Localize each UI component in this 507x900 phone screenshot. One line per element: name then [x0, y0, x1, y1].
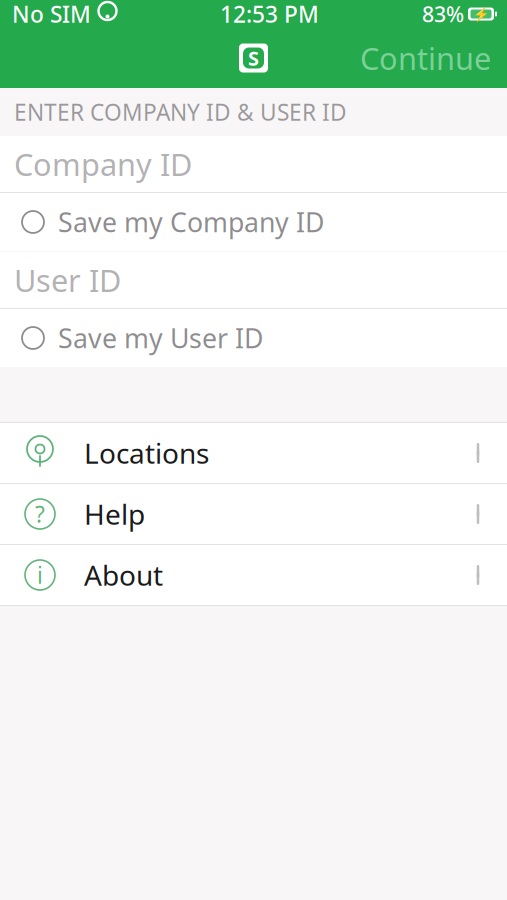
staticText: Continue: [360, 38, 491, 78]
button[interactable]: Continue: [360, 38, 507, 78]
button[interactable]: ?: [0, 484, 507, 544]
staticText: Locations: [84, 434, 209, 472]
staticText: No SIM: [12, 0, 91, 29]
staticText: ?: [35, 499, 45, 529]
staticText: About: [84, 556, 163, 594]
staticText: 83%: [422, 0, 464, 28]
button[interactable]: Locations: [0, 423, 507, 483]
staticText: Company ID: [14, 144, 192, 184]
staticText: Help: [84, 495, 145, 533]
staticText: User ID: [14, 260, 121, 300]
button[interactable]: Save my User ID: [0, 309, 507, 367]
staticText: S: [248, 45, 259, 71]
staticText: Save my Company ID: [58, 204, 324, 240]
staticText: 12:53 PM: [220, 0, 319, 29]
button[interactable]: App logo: [239, 43, 268, 72]
staticText: Save my User ID: [58, 320, 263, 356]
button[interactable]: Save my Company ID: [0, 193, 507, 251]
button[interactable]: Company ID: [0, 136, 507, 192]
button[interactable]: User ID: [0, 252, 507, 308]
staticText: i: [37, 560, 43, 590]
staticText: ENTER COMPANY ID & USER ID: [14, 97, 347, 127]
staticText: ⚡: [472, 6, 489, 22]
button[interactable]: i: [0, 545, 507, 605]
